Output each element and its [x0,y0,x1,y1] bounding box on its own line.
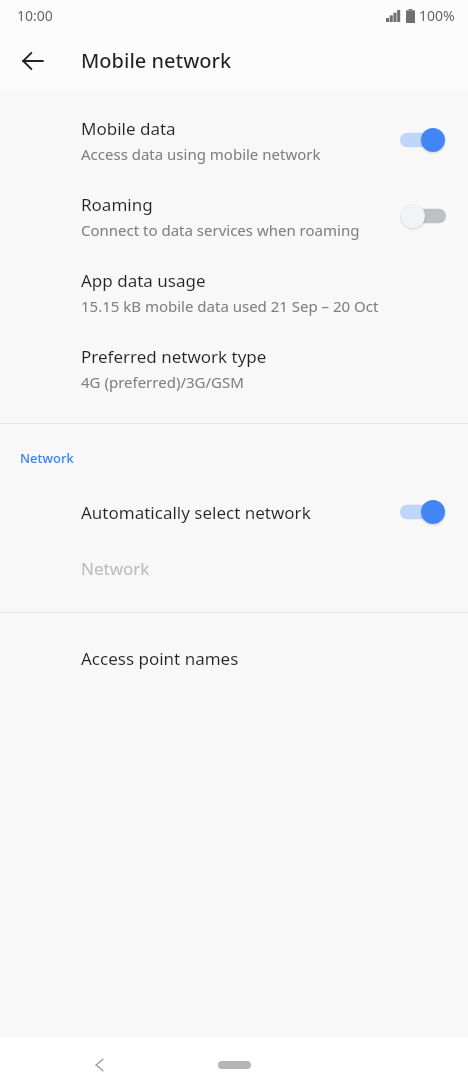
button[interactable]: Automatically select network [0,489,468,535]
staticText: 4G (preferred)/3G/GSM [81,372,244,392]
button[interactable]: On [400,127,446,153]
button[interactable]: Access point names [0,629,468,687]
staticText: Network [81,557,150,580]
staticText: Mobile network [81,47,232,74]
staticText: Access point names [81,647,239,670]
staticText: Access data using mobile network [81,144,321,164]
button[interactable]: Off [400,203,446,229]
staticText: 15.15 kB mobile data used 21 Sep – 20 Oc… [81,296,379,316]
button[interactable]: Roaming [0,178,468,254]
button[interactable]: Preferred network type [0,330,468,406]
button[interactable]: Back [78,1043,122,1087]
button[interactable]: Home [201,1050,267,1080]
button[interactable]: Back [10,38,56,84]
button[interactable]: Mobile data [0,102,468,178]
staticText: 100% [419,6,455,25]
staticText: 10:00 [17,6,53,25]
staticText: Preferred network type [81,345,267,368]
button[interactable]: App data usage [0,254,468,330]
staticText: Roaming [81,193,153,216]
staticText: App data usage [81,269,206,292]
button[interactable]: On [400,499,446,525]
staticText: Network [20,449,74,467]
staticText: Mobile data [81,117,176,140]
staticText: Connect to data services when roaming [81,220,360,240]
staticText: Automatically select network [81,501,311,524]
